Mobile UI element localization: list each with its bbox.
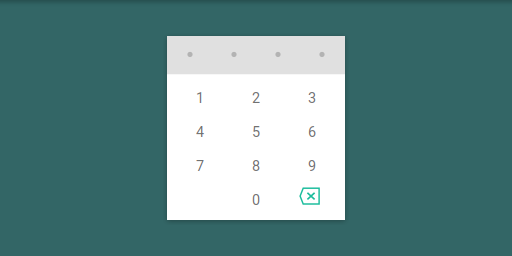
button[interactable]: 6 — [284, 115, 340, 149]
button[interactable]: 7 — [172, 149, 228, 183]
staticText: 7 — [196, 158, 204, 174]
staticText: 9 — [308, 158, 316, 174]
staticText: 5 — [252, 124, 260, 140]
staticText: 4 — [196, 124, 204, 140]
staticText: 8 — [252, 158, 260, 174]
button[interactable]: 3 — [284, 81, 340, 115]
staticText: 0 — [252, 192, 260, 208]
staticText: 6 — [308, 124, 316, 140]
button[interactable]: 9 — [284, 149, 340, 183]
button[interactable]: 0 — [228, 183, 284, 217]
staticText: 1 — [196, 90, 204, 106]
staticText: 3 — [308, 90, 316, 106]
button[interactable]: 1 — [172, 81, 228, 115]
button[interactable]: 5 — [228, 115, 284, 149]
button[interactable]: 8 — [228, 149, 284, 183]
button[interactable]: Delete — [284, 183, 340, 217]
button[interactable]: 2 — [228, 81, 284, 115]
staticText: 2 — [252, 90, 260, 106]
button[interactable]: 4 — [172, 115, 228, 149]
